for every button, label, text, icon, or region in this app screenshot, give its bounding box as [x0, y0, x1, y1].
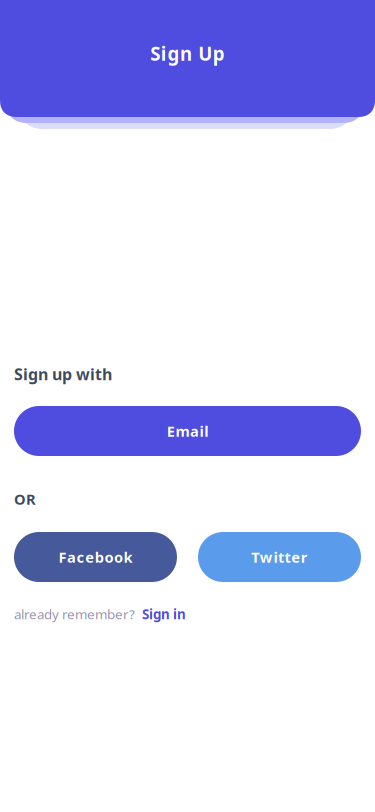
staticText: OR	[14, 489, 36, 509]
staticText: Sign Up	[150, 41, 225, 66]
staticText: Email	[167, 421, 208, 441]
button[interactable]: Email	[14, 406, 361, 456]
button[interactable]: Facebook	[14, 532, 177, 582]
button[interactable]: Sign in	[142, 605, 186, 623]
staticText: Sign in	[142, 605, 186, 623]
staticText: Facebook	[58, 547, 133, 567]
button[interactable]: Twitter	[198, 532, 361, 582]
staticText: Sign up with	[14, 363, 112, 385]
staticText: already remember?	[14, 605, 135, 623]
staticText: Twitter	[251, 547, 308, 567]
